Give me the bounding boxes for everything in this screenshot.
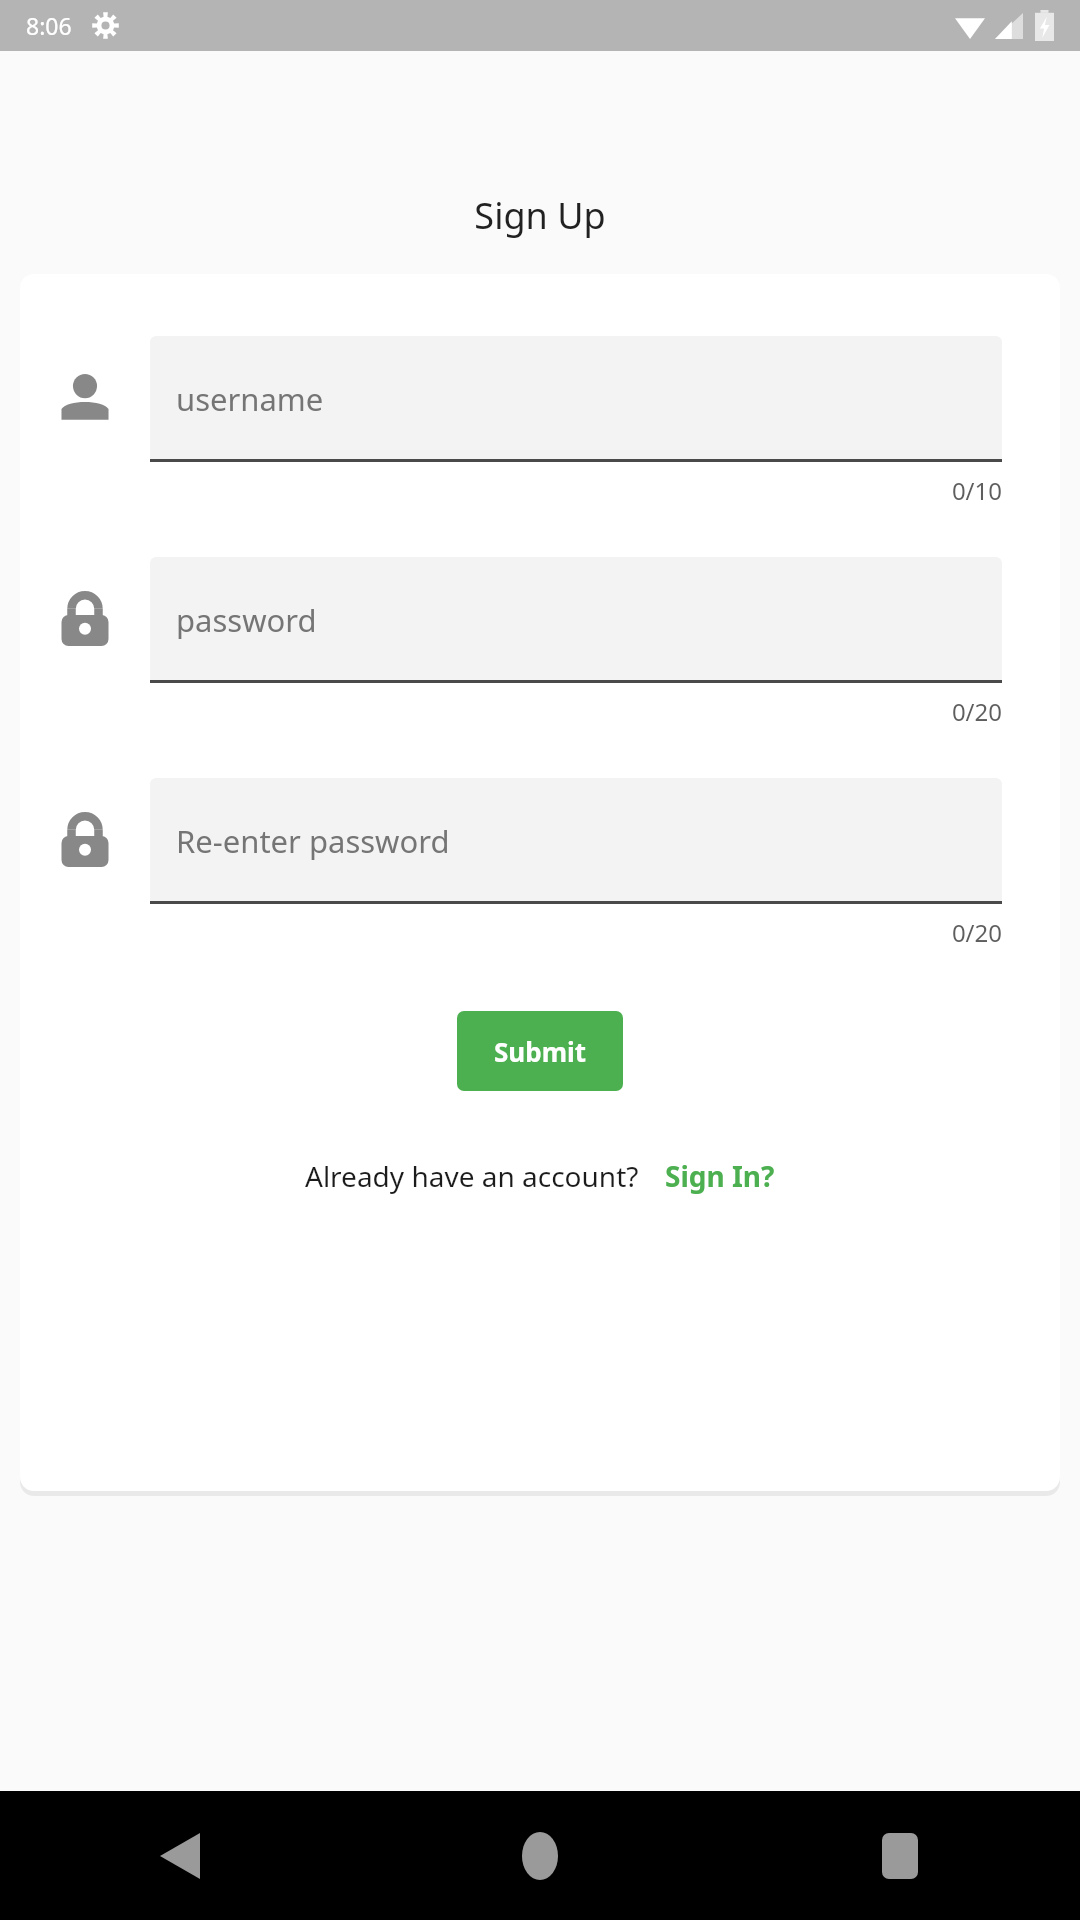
staticText: 8:06 [26, 10, 72, 41]
button[interactable]: Re-enter password [150, 778, 1002, 904]
other: Password [20, 557, 150, 683]
button[interactable]: username [150, 336, 1002, 462]
staticText: Sign Up [0, 191, 1080, 240]
staticText: 0/20 [150, 695, 1002, 728]
button[interactable]: Submit [457, 1011, 623, 1091]
other: Confirm password [20, 778, 150, 904]
staticText: Re-enter password [176, 820, 450, 862]
staticText: Submit [494, 1034, 587, 1069]
button[interactable]: Sign In? [665, 1157, 775, 1195]
staticText: username [176, 378, 324, 420]
other: Username [20, 336, 150, 462]
staticText: Already have an account? [305, 1157, 639, 1195]
staticText: 0/20 [150, 916, 1002, 949]
button[interactable]: password [150, 557, 1002, 683]
button[interactable]: Recent apps [720, 1791, 1080, 1920]
button[interactable]: Back [0, 1791, 360, 1920]
staticText: 0/10 [150, 474, 1002, 507]
staticText: password [176, 599, 317, 641]
staticText: Sign In? [665, 1157, 775, 1195]
button[interactable]: Home [360, 1791, 720, 1920]
